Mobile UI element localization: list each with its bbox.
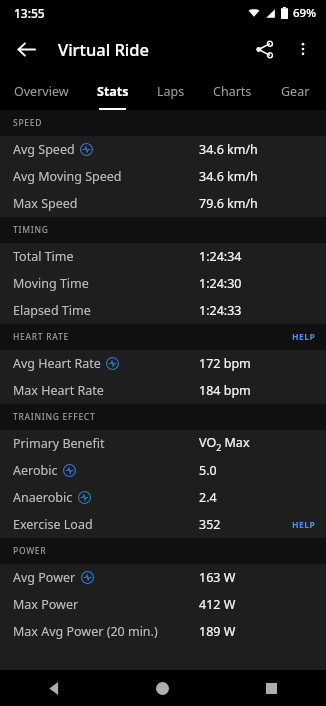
staticText: Charts — [213, 83, 252, 100]
button[interactable]: Max Avg Power (20 min.) — [0, 618, 326, 645]
button[interactable]: Moving Time — [0, 270, 326, 297]
staticText: HEART RATE — [13, 331, 69, 343]
staticText: Aerobic — [13, 462, 58, 479]
staticText: Virtual Ride — [58, 38, 150, 60]
button[interactable]: HELP — [282, 324, 326, 350]
staticText: POWER — [13, 545, 47, 557]
staticText: Avg Speed — [13, 141, 75, 158]
button[interactable]: Exercise Load — [0, 511, 326, 538]
staticText: Moving Time — [13, 275, 89, 292]
staticText: HELP — [292, 519, 316, 531]
staticText: 189 W — [199, 623, 236, 640]
button[interactable]: More options — [284, 30, 322, 68]
button[interactable]: Anaerobic — [0, 484, 326, 511]
button[interactable]: Back — [6, 29, 46, 69]
staticText: Primary Benefit — [13, 435, 105, 452]
button[interactable]: Max Heart Rate — [0, 377, 326, 404]
staticText: Max Heart Rate — [13, 382, 104, 399]
staticText: Stats — [97, 83, 129, 100]
staticText: Max Avg Power (20 min.) — [13, 623, 158, 640]
staticText: 172 bpm — [199, 355, 251, 372]
staticText: 163 W — [199, 569, 236, 586]
staticText: 184 bpm — [199, 382, 251, 399]
staticText: Total Time — [13, 248, 74, 265]
button[interactable]: Primary Benefit — [0, 430, 326, 457]
button[interactable]: Gear — [265, 72, 326, 110]
button[interactable]: More information — [81, 571, 94, 584]
staticText: Gear — [281, 83, 310, 100]
button[interactable]: Avg Moving Speed — [0, 163, 326, 190]
staticText: TIMING — [13, 224, 49, 236]
staticText: TRAINING EFFECT — [13, 411, 96, 423]
button[interactable]: Recent apps — [217, 670, 326, 706]
staticText: 34.6 km/h — [199, 168, 258, 185]
button[interactable]: Share — [244, 29, 284, 69]
staticText: Avg Heart Rate — [13, 355, 101, 372]
button[interactable]: Stats — [82, 72, 143, 110]
staticText: Overview — [14, 83, 69, 100]
button[interactable]: More information — [106, 357, 119, 370]
staticText: Laps — [157, 83, 185, 100]
staticText: HELP — [292, 331, 316, 343]
staticText: 1:24:34 — [199, 248, 242, 265]
staticText: Max Speed — [13, 195, 78, 212]
staticText: 1:24:33 — [199, 302, 242, 319]
button[interactable]: Max Speed — [0, 190, 326, 217]
staticText: 34.6 km/h — [199, 141, 258, 158]
button[interactable]: Avg Speed — [0, 136, 326, 163]
staticText: VO2 Max — [199, 434, 250, 453]
staticText: 352 — [199, 516, 221, 533]
button[interactable]: More information — [78, 491, 91, 504]
button[interactable]: More information — [63, 464, 76, 477]
staticText: Exercise Load — [13, 516, 93, 533]
staticText: 13:55 — [14, 5, 45, 21]
staticText: 412 W — [199, 596, 236, 613]
button[interactable]: Max Power — [0, 591, 326, 618]
staticText: SPEED — [13, 117, 43, 129]
staticText: 69% — [293, 5, 316, 21]
staticText: Anaerobic — [13, 489, 73, 506]
staticText: Avg Power — [13, 569, 76, 586]
button[interactable]: Back — [0, 670, 108, 706]
button[interactable]: Charts — [199, 72, 265, 110]
staticText: Avg Moving Speed — [13, 168, 122, 185]
button[interactable]: Home — [108, 670, 217, 706]
button[interactable]: Laps — [143, 72, 199, 110]
button[interactable]: Elapsed Time — [0, 297, 326, 324]
button[interactable]: Avg Power — [0, 564, 326, 591]
button[interactable]: More information — [80, 143, 93, 156]
staticText: 2.4 — [199, 489, 217, 506]
staticText: 5.0 — [199, 462, 217, 479]
button[interactable]: Aerobic — [0, 457, 326, 484]
button[interactable]: Overview — [0, 72, 82, 110]
staticText: 79.6 km/h — [199, 195, 258, 212]
staticText: Elapsed Time — [13, 302, 91, 319]
staticText: Max Power — [13, 596, 79, 613]
button[interactable]: HELP — [282, 511, 326, 538]
button[interactable]: Avg Heart Rate — [0, 350, 326, 377]
button[interactable]: Total Time — [0, 243, 326, 270]
staticText: 1:24:30 — [199, 275, 242, 292]
